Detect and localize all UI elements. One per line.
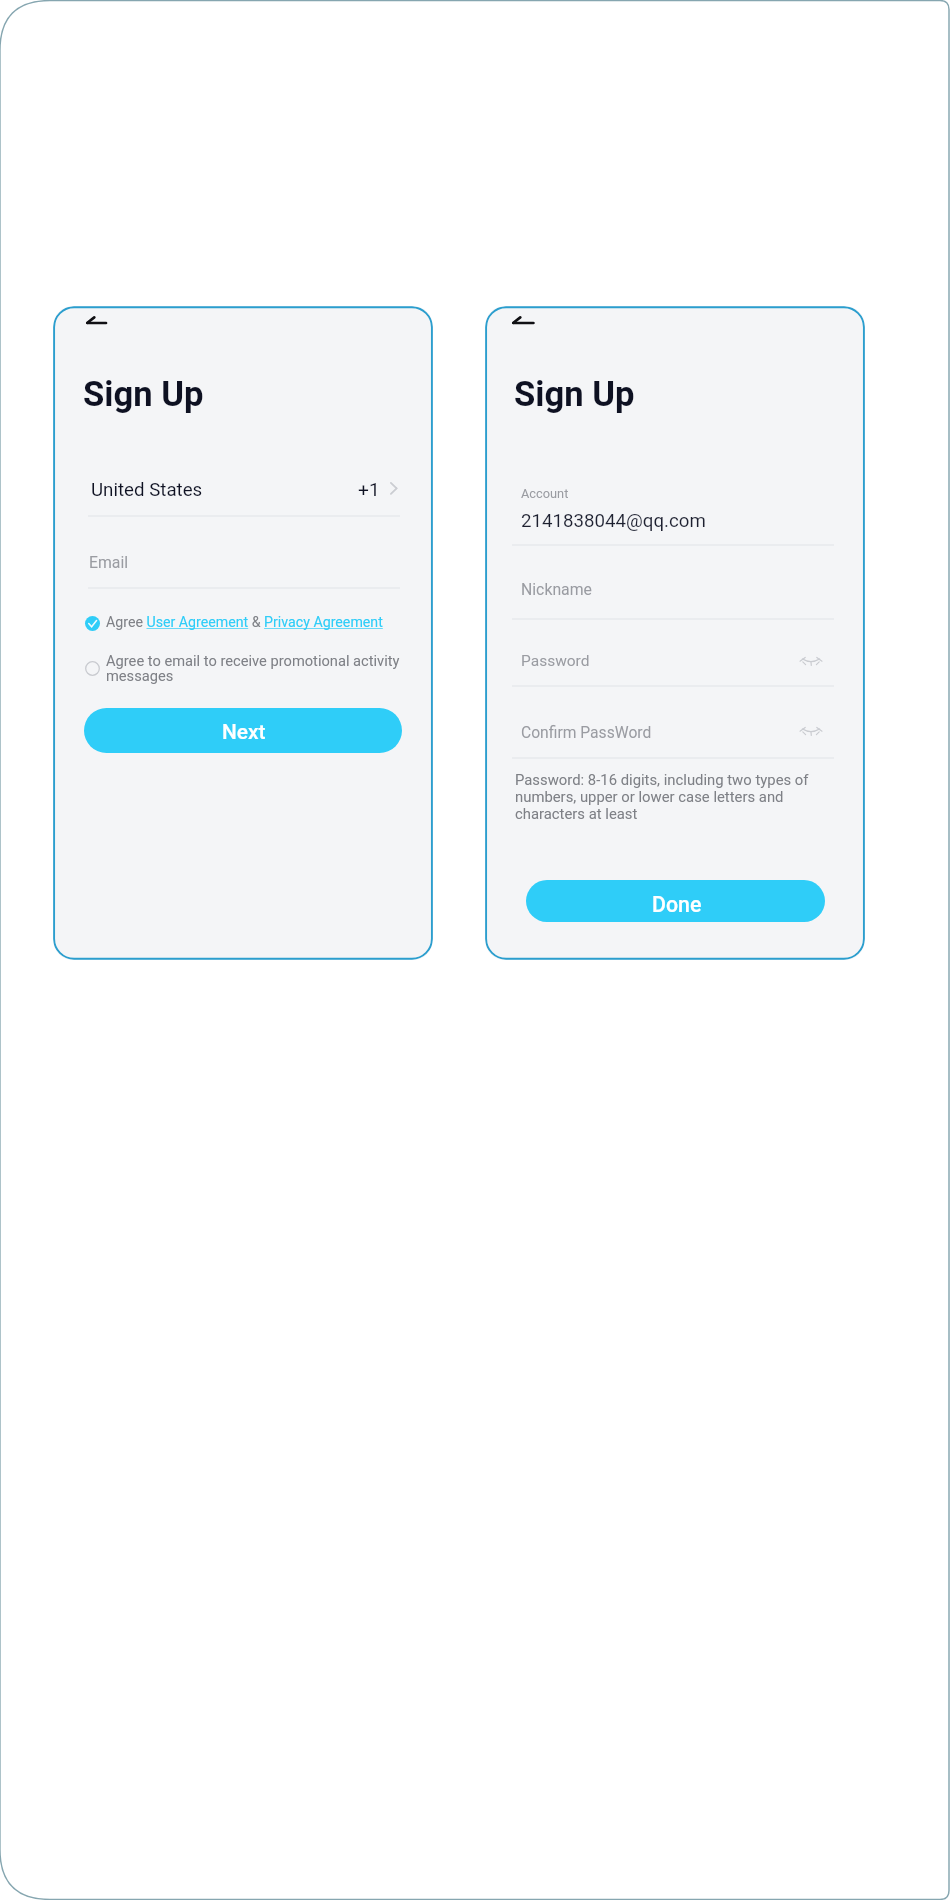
staticText: Sign Up — [83, 374, 204, 415]
staticText: Confirm PassWord — [521, 723, 652, 741]
staticText: Sign Up — [514, 374, 635, 415]
staticText: Agree User Agreement & Privacy Agreement — [106, 614, 383, 631]
staticText: Done — [652, 892, 702, 917]
staticText: +1 — [358, 478, 380, 501]
button[interactable]: Password — [512, 636, 834, 684]
staticText: Nickname — [521, 580, 592, 599]
button[interactable]: Show password — [797, 650, 825, 672]
button[interactable]: Confirm PassWord — [512, 706, 834, 754]
staticText: Next — [222, 720, 266, 744]
staticText: Email — [89, 553, 129, 572]
button[interactable]: Account — [512, 478, 834, 540]
button[interactable]: Agree to email to receive promotional ac… — [84, 649, 406, 687]
staticText: Agree to email to receive promotional ac… — [106, 652, 406, 685]
staticText: United States — [91, 479, 203, 501]
button[interactable]: United States — [88, 466, 400, 516]
staticText: Password: 8-16 digits, including two typ… — [515, 771, 825, 822]
button[interactable]: Back — [503, 307, 543, 333]
button[interactable]: Nickname — [512, 564, 834, 614]
button[interactable]: Back — [77, 307, 116, 333]
staticText: 2141838044@qq.com — [521, 510, 706, 532]
button[interactable]: Email — [88, 538, 400, 586]
button[interactable]: Show password — [797, 720, 825, 742]
staticText: Account — [521, 486, 569, 501]
button[interactable]: Done — [526, 880, 825, 922]
button[interactable]: Agree User Agreement & Privacy Agreement — [84, 611, 406, 638]
staticText: Password — [521, 652, 590, 670]
button[interactable]: Next — [84, 708, 402, 753]
